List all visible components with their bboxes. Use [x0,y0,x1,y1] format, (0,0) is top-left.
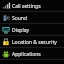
button[interactable]: Location & security [0,36,64,48]
button[interactable]: Sound [0,12,64,24]
staticText: Location & security [12,39,57,46]
staticText: Call settings [12,3,41,10]
button[interactable]: Display [0,24,64,36]
staticText: Display [12,27,30,34]
button[interactable]: Call settings [0,0,64,12]
staticText: Applications [12,51,41,58]
staticText: Sound [12,15,28,22]
button[interactable]: Applications [0,48,64,60]
